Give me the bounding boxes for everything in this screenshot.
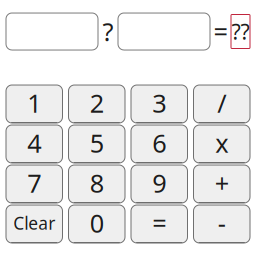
button[interactable]: 9 [131, 165, 187, 203]
staticText: 2 [90, 86, 104, 120]
staticText: 9 [152, 166, 166, 200]
staticText: / [217, 86, 226, 120]
button[interactable]: 2 [68, 85, 125, 123]
staticText: + [215, 166, 229, 200]
button[interactable]: x [193, 125, 250, 163]
staticText: x [215, 126, 228, 160]
button[interactable]: 5 [68, 125, 125, 163]
button[interactable]: Operand [118, 13, 210, 50]
staticText: = [213, 15, 227, 48]
staticText: = [152, 206, 166, 240]
button[interactable]: 8 [68, 165, 125, 203]
staticText: 3 [152, 86, 166, 120]
button[interactable]: 3 [131, 85, 187, 123]
staticText: 6 [152, 126, 166, 160]
button[interactable]: 0 [68, 205, 125, 243]
staticText: ?? [231, 17, 249, 46]
button[interactable]: 4 [6, 125, 62, 163]
button[interactable]: = [131, 205, 187, 243]
staticText: 5 [90, 126, 104, 160]
button[interactable]: / [193, 85, 250, 123]
button[interactable]: Clear [6, 205, 62, 243]
button[interactable]: Operand [6, 13, 98, 50]
button[interactable]: 1 [6, 85, 62, 123]
staticText: Clear [13, 211, 55, 234]
staticText: 0 [90, 206, 104, 240]
staticText: 7 [27, 166, 41, 200]
button[interactable]: 6 [131, 125, 187, 163]
staticText: 4 [27, 126, 41, 160]
staticText: - [218, 206, 226, 240]
staticText: 1 [27, 86, 41, 120]
button[interactable]: + [193, 165, 250, 203]
button[interactable]: - [193, 205, 250, 243]
button[interactable]: 7 [6, 165, 62, 203]
staticText: 8 [90, 166, 104, 200]
staticText: ? [102, 15, 113, 48]
